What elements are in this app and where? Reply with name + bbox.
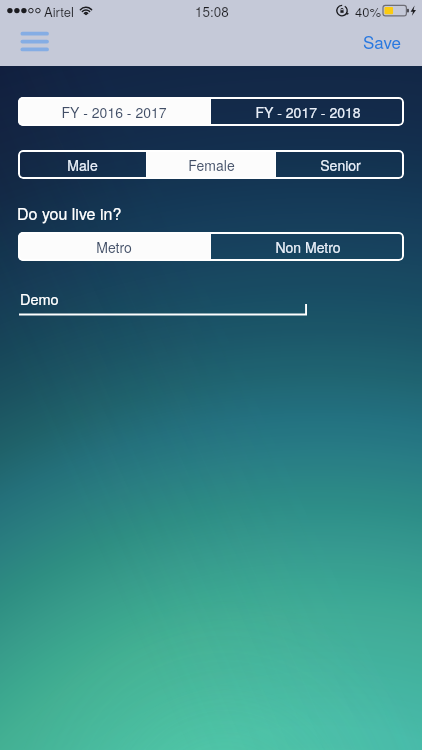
button[interactable]: FY - 2017 - 2018 xyxy=(211,97,404,126)
button[interactable]: Save xyxy=(352,22,414,66)
staticText: Airtel xyxy=(44,2,74,21)
staticText: FY - 2016 - 2017 xyxy=(61,102,167,122)
button[interactable]: Demo xyxy=(19,289,307,321)
staticText: 15:08 xyxy=(195,2,229,21)
button[interactable]: Senior xyxy=(276,150,404,179)
button[interactable]: Male xyxy=(18,150,146,179)
staticText: Save xyxy=(363,29,402,53)
button[interactable]: Metro xyxy=(18,232,210,261)
staticText: 40% xyxy=(355,2,382,21)
staticText: Metro xyxy=(96,237,132,257)
button[interactable]: Female xyxy=(147,150,275,179)
button[interactable]: Non Metro xyxy=(211,232,404,261)
staticText: Non Metro xyxy=(275,237,341,257)
button[interactable]: FY - 2016 - 2017 xyxy=(18,97,210,126)
staticText: Female xyxy=(188,155,235,175)
button[interactable]: Open navigation menu xyxy=(13,24,57,64)
staticText: Do you live in? xyxy=(17,202,122,225)
staticText: FY - 2017 - 2018 xyxy=(255,102,361,122)
staticText: Demo xyxy=(20,288,59,309)
staticText: Male xyxy=(67,155,98,175)
staticText: Senior xyxy=(320,155,361,175)
